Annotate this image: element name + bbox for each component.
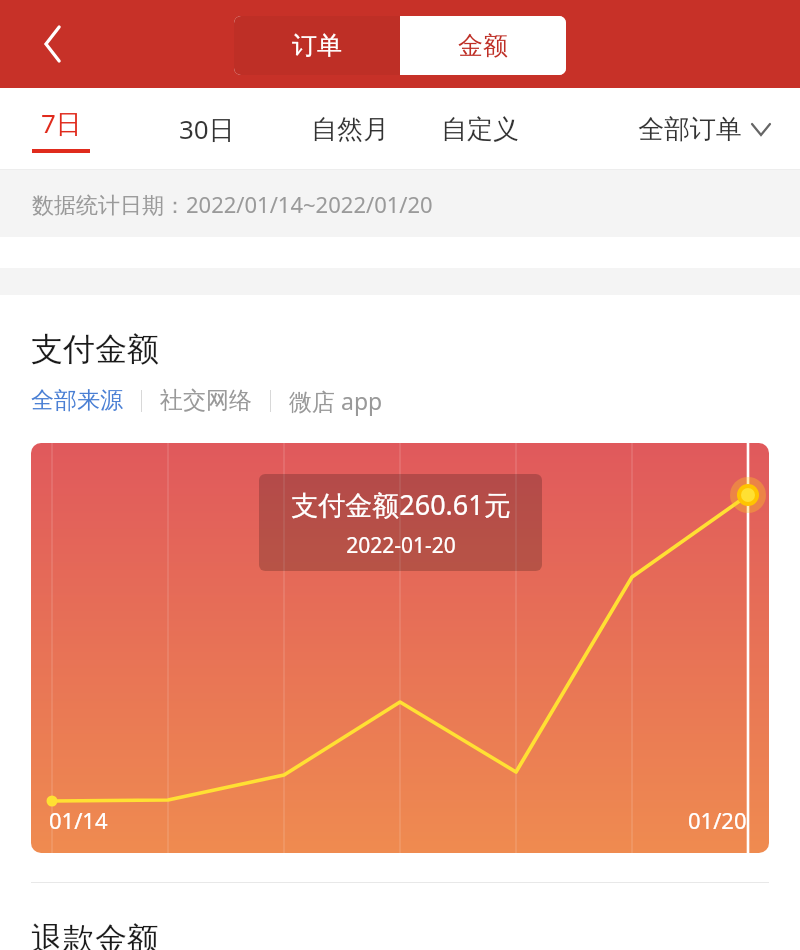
staticText: 7日 bbox=[41, 105, 82, 141]
staticText: 订单 bbox=[292, 30, 342, 61]
button[interactable]: 订单 bbox=[234, 16, 400, 75]
staticText: 金额 bbox=[458, 30, 508, 61]
button[interactable]: Back bbox=[25, 16, 81, 72]
button[interactable]: 自定义 bbox=[439, 107, 521, 152]
staticText: 社交网络 bbox=[160, 386, 252, 415]
staticText: 退款金额 bbox=[31, 919, 159, 950]
button[interactable]: 微店 app bbox=[289, 385, 383, 416]
staticText: 30日 bbox=[179, 111, 235, 147]
button[interactable]: 全部来源 bbox=[31, 386, 123, 415]
button[interactable]: 金额 bbox=[400, 16, 566, 75]
staticText: 2022-01-20 bbox=[346, 531, 456, 560]
staticText: 数据统计日期：2022/01/14~2022/01/20 bbox=[32, 189, 433, 219]
staticText: 全部订单 bbox=[638, 113, 742, 146]
button[interactable]: 自然月 bbox=[309, 107, 391, 152]
staticText: 支付金额 bbox=[31, 329, 159, 369]
staticText: 自然月 bbox=[311, 113, 389, 146]
staticText: 全部来源 bbox=[31, 386, 123, 415]
staticText: 01/14 bbox=[49, 805, 108, 835]
button[interactable]: 社交网络 bbox=[160, 386, 252, 415]
staticText: 自定义 bbox=[441, 113, 519, 146]
button[interactable]: 01/14 bbox=[31, 443, 769, 853]
button[interactable]: 7日 bbox=[30, 105, 92, 153]
button[interactable]: 30日 bbox=[177, 105, 237, 153]
staticText: 01/20 bbox=[688, 805, 747, 835]
button[interactable]: 全部订单 bbox=[638, 113, 800, 146]
staticText: 微店 app bbox=[289, 385, 383, 416]
staticText: 支付金额260.61元 bbox=[291, 486, 511, 523]
